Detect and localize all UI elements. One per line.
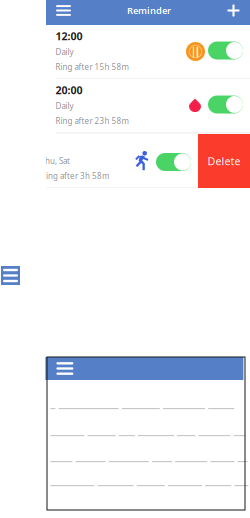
staticText: Daily bbox=[55, 101, 73, 111]
staticText: Ring after 3h 58m bbox=[41, 171, 109, 181]
staticText: Reminder bbox=[127, 4, 171, 17]
staticText: Thu, Sat bbox=[41, 156, 70, 166]
button[interactable]: Menu bbox=[46, 0, 81, 25]
staticText: 12:00 bbox=[55, 29, 82, 43]
button[interactable]: 20:00 bbox=[46, 79, 250, 133]
staticText: Daily bbox=[55, 47, 73, 57]
staticText: 20:00 bbox=[55, 83, 82, 97]
button[interactable]: Add reminder bbox=[217, 0, 250, 25]
staticText: Ring after 15h 58m bbox=[55, 62, 128, 72]
button[interactable]: Delete bbox=[198, 134, 250, 188]
button[interactable]: Menu bbox=[1, 266, 20, 285]
staticText: Ring after 23h 58m bbox=[55, 116, 128, 126]
staticText: Delete bbox=[207, 154, 240, 168]
button[interactable]: 12:00 bbox=[46, 25, 250, 79]
